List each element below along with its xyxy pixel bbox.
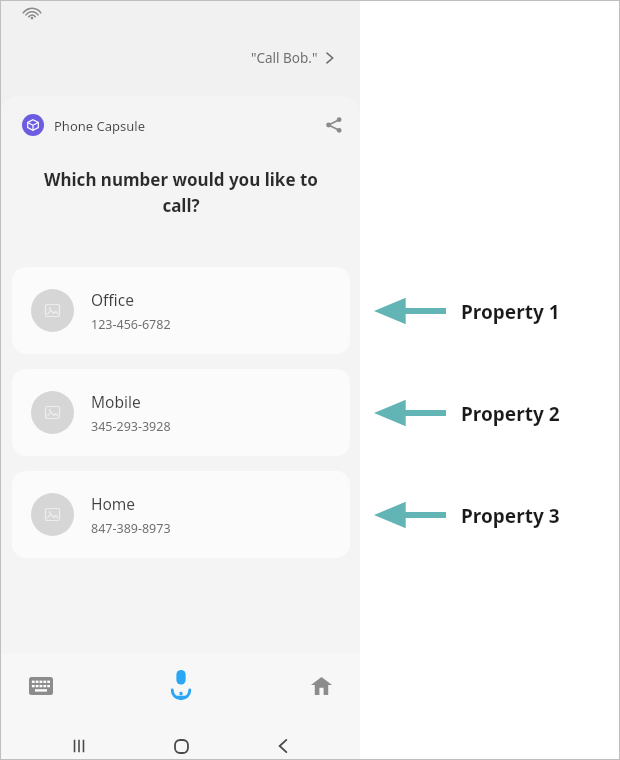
button[interactable]: Keyboard (21, 666, 61, 706)
staticText: 847-389-8973 (91, 520, 171, 537)
staticText: Which number would you like to call? (31, 168, 331, 217)
staticText: Mobile (91, 391, 141, 412)
button[interactable]: Recents (58, 725, 100, 760)
staticText: "Call Bob." (251, 49, 318, 67)
staticText: Property 1 (461, 299, 560, 325)
button[interactable]: Home button (160, 725, 202, 760)
button[interactable]: "Call Bob." (251, 49, 336, 67)
staticText: 123-456-6782 (91, 316, 171, 333)
staticText: Property 2 (461, 401, 560, 427)
staticText: Home (91, 493, 136, 514)
staticText: Property 3 (461, 503, 560, 529)
button[interactable]: Office (12, 267, 350, 354)
staticText: 345-293-3928 (91, 418, 171, 435)
button[interactable]: Back (262, 725, 304, 760)
button[interactable]: Mobile (12, 369, 350, 456)
staticText: Office (91, 289, 134, 310)
button[interactable]: Share (319, 110, 349, 140)
button[interactable]: Microphone (161, 664, 201, 704)
button[interactable]: Home (12, 471, 350, 558)
button[interactable]: Home (301, 666, 341, 706)
staticText: Phone Capsule (54, 117, 145, 135)
